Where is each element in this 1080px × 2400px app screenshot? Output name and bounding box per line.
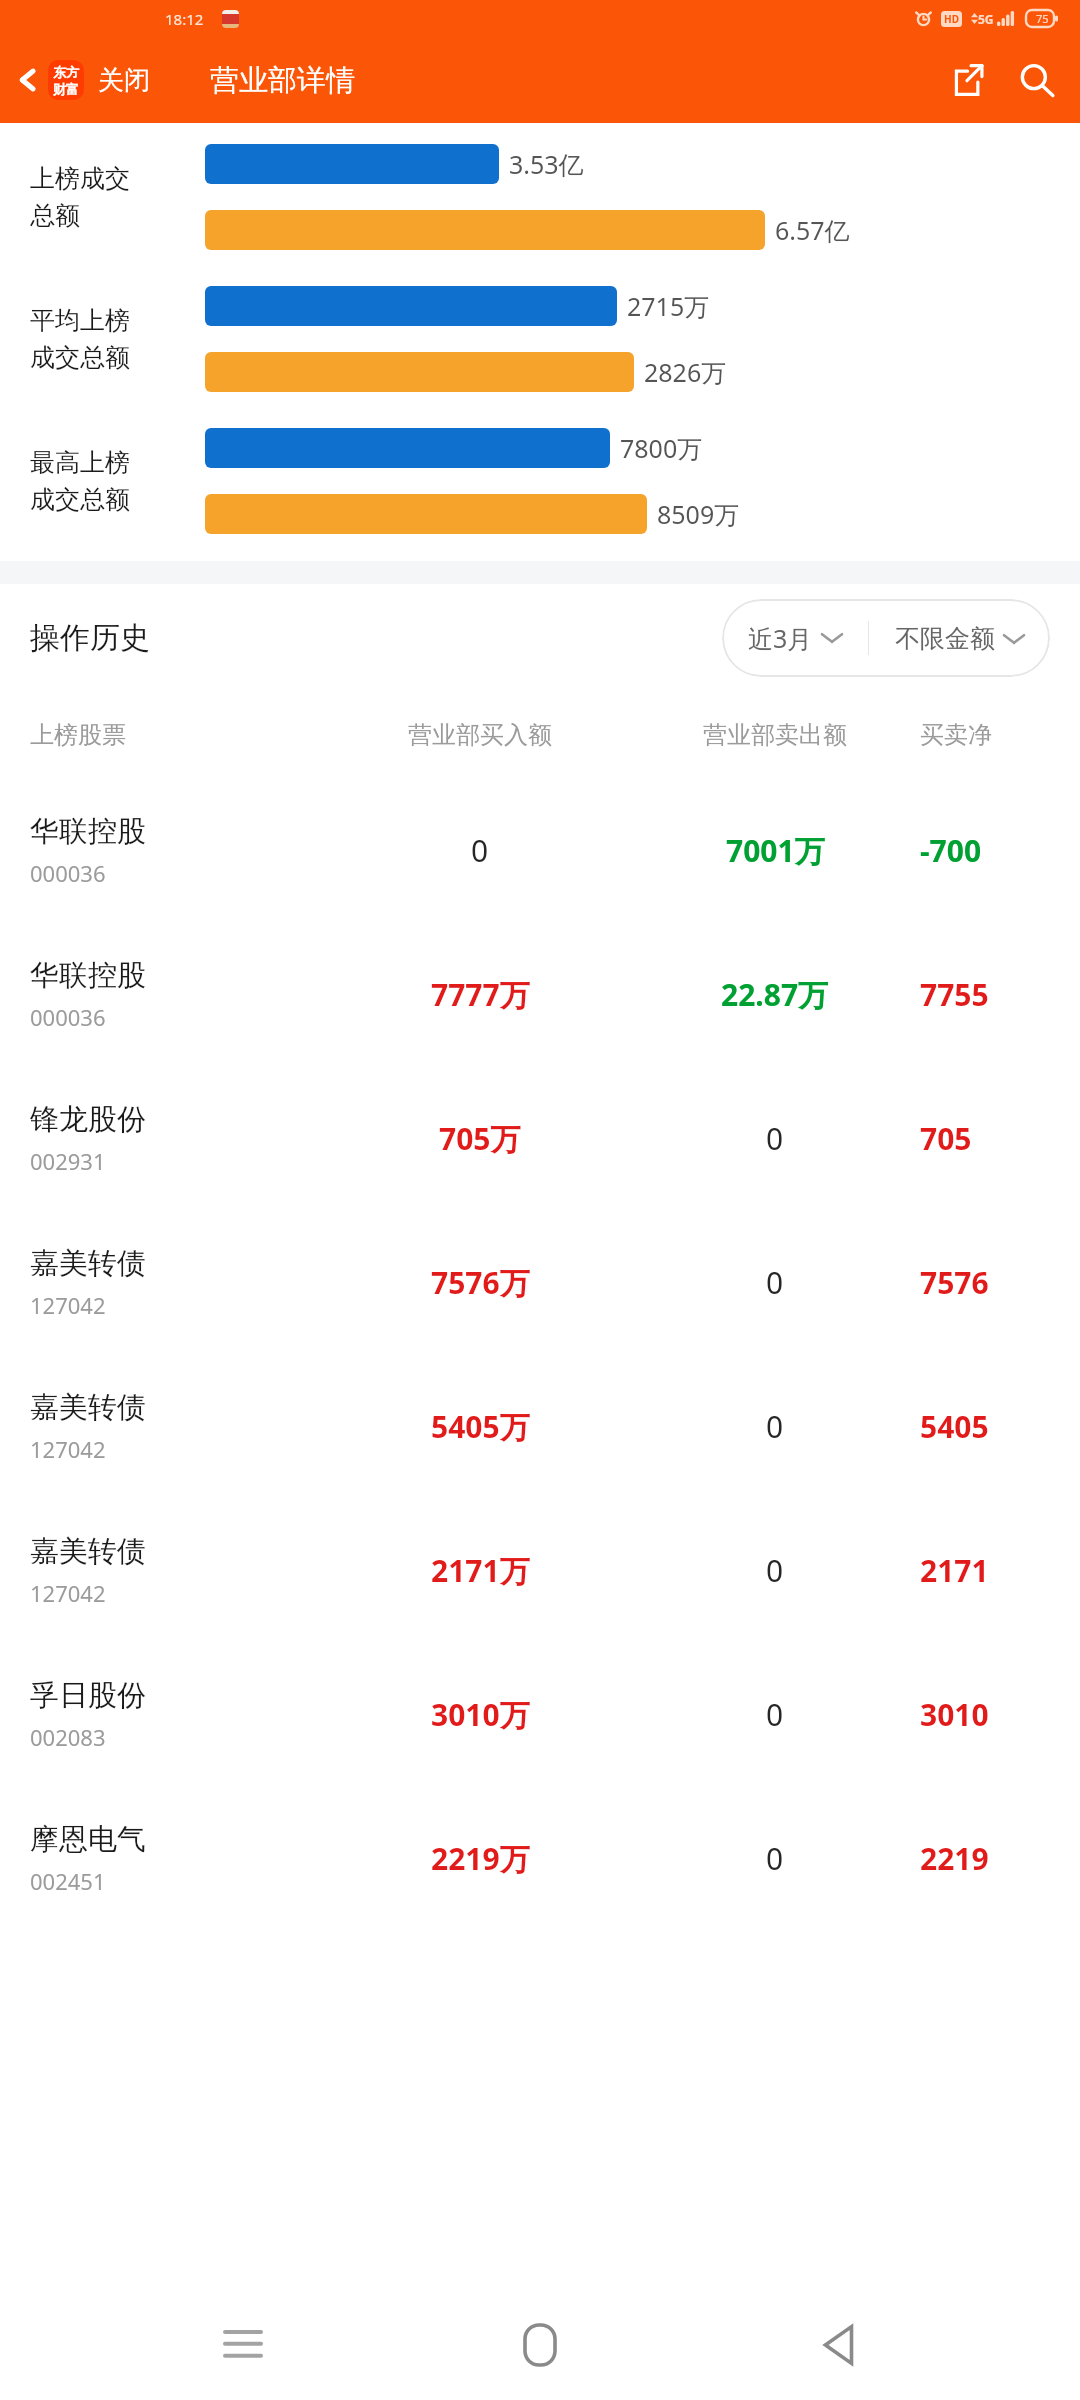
button[interactable]: 华联控股: [0, 778, 1080, 922]
staticText: 总额: [30, 200, 80, 231]
staticText: 705: [920, 1118, 972, 1159]
staticText: 0: [766, 1262, 784, 1303]
button[interactable]: Search: [1002, 46, 1070, 114]
staticText: 2826万: [644, 355, 727, 389]
staticText: 8509万: [657, 497, 740, 531]
staticText: 成交总额: [30, 484, 130, 515]
staticText: 18:12: [165, 9, 204, 29]
staticText: 7755: [920, 974, 989, 1015]
staticText: 002451: [30, 1866, 106, 1896]
staticText: 75: [1036, 11, 1049, 26]
staticText: 2219万: [431, 1838, 530, 1879]
staticText: 上榜股票: [30, 720, 126, 750]
staticText: 3010万: [431, 1694, 530, 1735]
staticText: 孚日股份: [30, 1677, 146, 1714]
button[interactable]: 嘉美转债: [0, 1354, 1080, 1498]
staticText: 0: [766, 1550, 784, 1591]
staticText: 7777万: [431, 974, 530, 1015]
staticText: 0: [766, 1118, 784, 1159]
staticText: 0: [766, 1694, 784, 1735]
staticText: 000036: [30, 1002, 106, 1032]
button[interactable]: 孚日股份: [0, 1642, 1080, 1786]
staticText: 2219: [920, 1838, 989, 1879]
button[interactable]: Back: [0, 52, 88, 108]
button[interactable]: 不限金额: [869, 609, 1050, 668]
staticText: 财富: [53, 81, 79, 97]
staticText: 锋龙股份: [30, 1101, 146, 1138]
button[interactable]: Share: [936, 47, 1002, 113]
staticText: 平均上榜: [30, 305, 130, 336]
staticText: 5405: [920, 1406, 989, 1447]
button[interactable]: 嘉美转债: [0, 1210, 1080, 1354]
button[interactable]: 近3月: [722, 607, 868, 669]
staticText: 7001万: [726, 830, 825, 871]
staticText: 近3月: [748, 621, 813, 655]
staticText: 3010: [920, 1694, 989, 1735]
staticText: 7800万: [620, 431, 703, 465]
button[interactable]: 关闭: [88, 54, 160, 107]
staticText: 705万: [439, 1118, 521, 1159]
staticText: 0: [766, 1406, 784, 1447]
staticText: 127042: [30, 1434, 106, 1464]
staticText: 127042: [30, 1578, 106, 1608]
staticText: 7576万: [431, 1262, 530, 1303]
staticText: 最高上榜: [30, 447, 130, 478]
staticText: 2171: [920, 1550, 989, 1591]
staticText: 华联控股: [30, 957, 146, 994]
staticText: 操作历史: [30, 619, 150, 657]
staticText: 华联控股: [30, 813, 146, 850]
staticText: 0: [766, 1838, 784, 1879]
staticText: 002083: [30, 1722, 106, 1752]
staticText: 127042: [30, 1290, 106, 1320]
staticText: 关闭: [98, 64, 150, 97]
button[interactable]: Back: [783, 2290, 893, 2400]
staticText: HD: [944, 12, 959, 26]
staticText: -700: [920, 830, 982, 871]
button[interactable]: 华联控股: [0, 922, 1080, 1066]
staticText: 上榜成交: [30, 163, 130, 194]
staticText: 5G: [978, 11, 994, 27]
staticText: 成交总额: [30, 342, 130, 373]
button[interactable]: Home: [485, 2290, 595, 2400]
staticText: 嘉美转债: [30, 1245, 146, 1282]
staticText: 6.57亿: [775, 213, 850, 247]
staticText: 不限金额: [895, 623, 995, 654]
button[interactable]: Recents: [188, 2290, 298, 2400]
button[interactable]: 锋龙股份: [0, 1066, 1080, 1210]
staticText: 0: [471, 830, 489, 871]
staticText: 摩恩电气: [30, 1821, 146, 1858]
staticText: 营业部卖出额: [703, 720, 847, 750]
staticText: 000036: [30, 858, 106, 888]
staticText: 东方: [53, 64, 79, 80]
staticText: 3.53亿: [509, 147, 584, 181]
button[interactable]: 摩恩电气: [0, 1786, 1080, 1930]
staticText: 营业部详情: [210, 62, 355, 99]
staticText: 002931: [30, 1146, 106, 1176]
button[interactable]: 嘉美转债: [0, 1498, 1080, 1642]
staticText: 嘉美转债: [30, 1389, 146, 1426]
staticText: 2171万: [431, 1550, 530, 1591]
staticText: 嘉美转债: [30, 1533, 146, 1570]
staticText: 22.87万: [721, 974, 829, 1015]
staticText: 买卖净: [920, 720, 992, 750]
staticText: 营业部买入额: [408, 720, 552, 750]
staticText: 5405万: [431, 1406, 530, 1447]
staticText: 7576: [920, 1262, 989, 1303]
staticText: 2715万: [627, 289, 710, 323]
